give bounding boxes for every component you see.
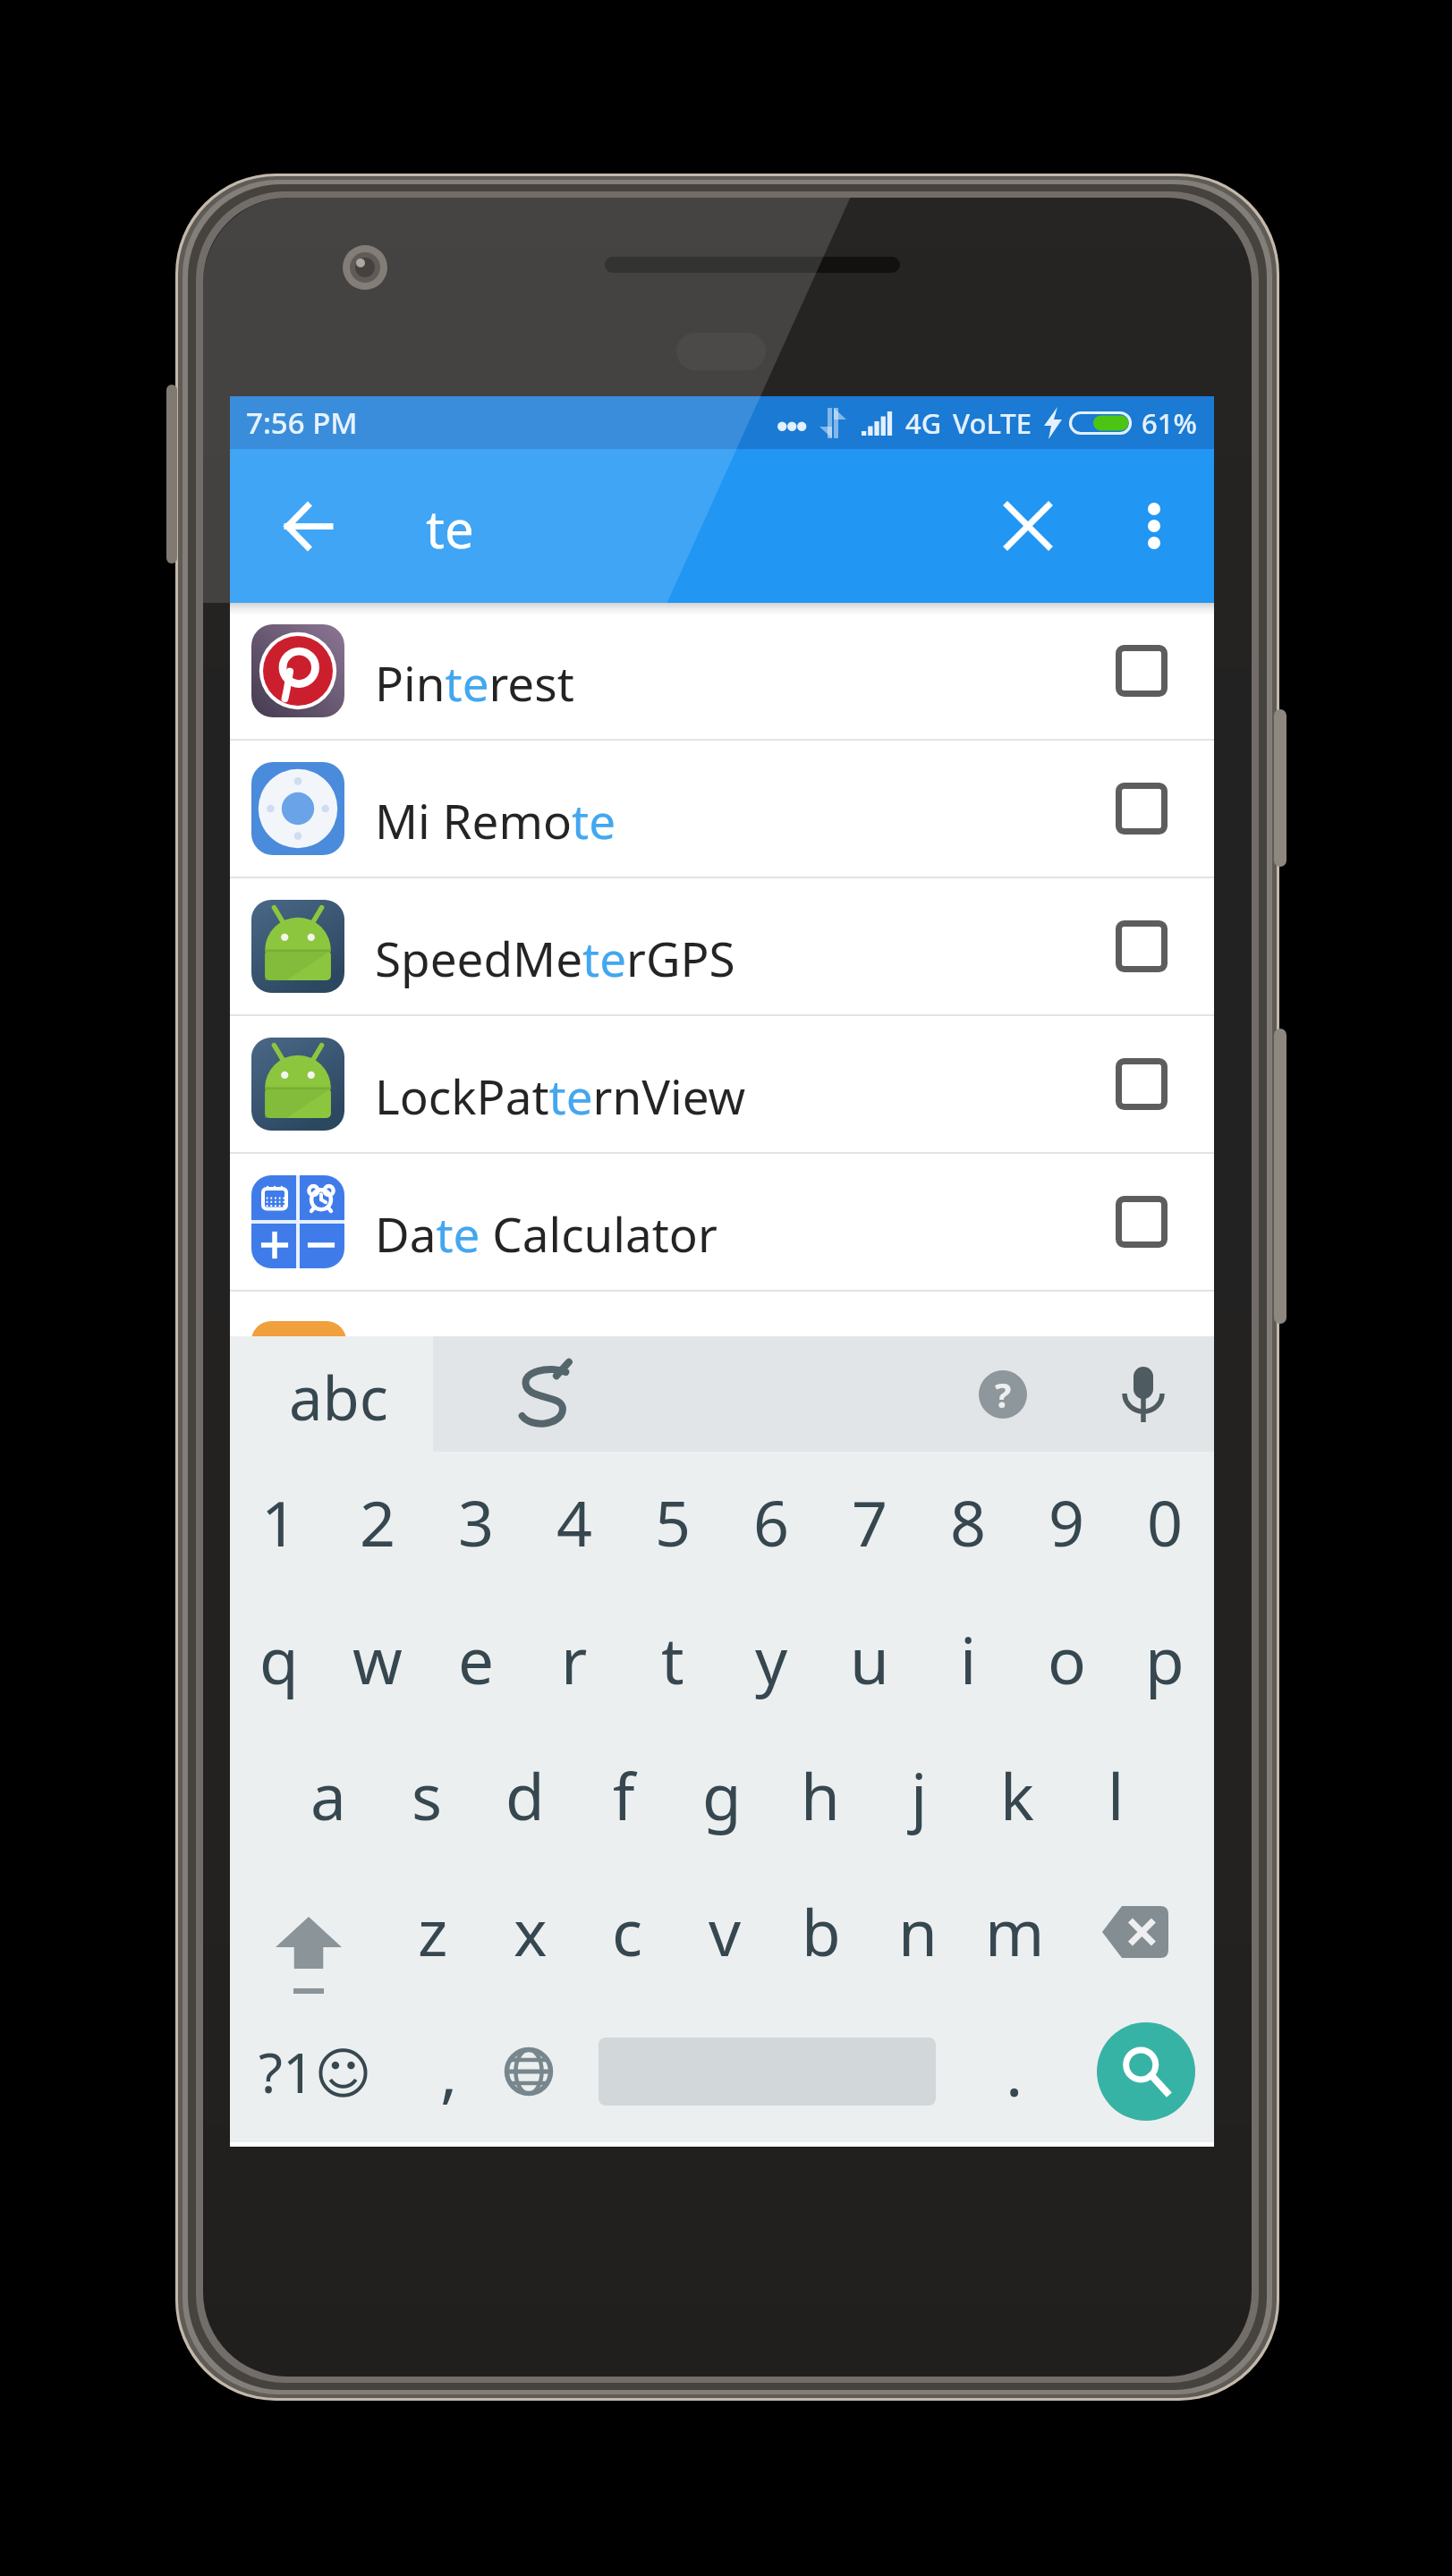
staticText: w <box>352 1616 403 1703</box>
button[interactable]: Back <box>251 449 362 603</box>
button[interactable]: 0 <box>1116 1452 1214 1591</box>
button[interactable]: Search <box>1077 2001 1214 2142</box>
button[interactable]: 3 <box>427 1452 525 1591</box>
staticText: 6 <box>753 1479 790 1564</box>
button[interactable]: Switch script <box>450 1342 638 1452</box>
staticText: i <box>960 1616 977 1703</box>
button[interactable]: l <box>1066 1728 1165 1862</box>
button[interactable]: Select app <box>1116 1058 1168 1110</box>
staticText: 5 <box>655 1479 692 1564</box>
button[interactable]: Change language <box>479 2001 579 2142</box>
staticText: h <box>801 1752 840 1839</box>
staticText: ? <box>995 1371 1012 1418</box>
button[interactable]: u <box>820 1591 919 1728</box>
button[interactable]: ?1☺ <box>244 2001 387 2142</box>
staticText: te <box>426 493 474 563</box>
button[interactable]: h <box>771 1728 870 1862</box>
button[interactable]: b <box>773 1862 870 2001</box>
button[interactable]: k <box>968 1728 1066 1862</box>
button[interactable]: m <box>966 1862 1063 2001</box>
button[interactable]: 6 <box>722 1452 820 1591</box>
staticText: . <box>1006 2028 1023 2115</box>
staticText: 1 <box>261 1479 298 1564</box>
staticText: Mi Remote <box>375 788 616 852</box>
button[interactable]: Voice input <box>1094 1336 1193 1452</box>
button[interactable]: Select app <box>1116 645 1168 697</box>
button[interactable]: q <box>230 1591 328 1728</box>
staticText: n <box>898 1888 938 1975</box>
button[interactable]: Select app <box>1116 783 1168 835</box>
staticText: c <box>612 1888 643 1975</box>
button[interactable]: 8 <box>919 1452 1017 1591</box>
staticText: 7 <box>852 1479 888 1564</box>
button[interactable]: j <box>870 1728 968 1862</box>
button[interactable]: p <box>1116 1591 1214 1728</box>
button[interactable]: 9 <box>1017 1452 1116 1591</box>
staticText: l <box>1108 1752 1125 1839</box>
button[interactable]: Mi Remote <box>230 741 1214 877</box>
button[interactable]: LockPatternView <box>230 1016 1214 1152</box>
staticText: v <box>709 1888 742 1975</box>
staticText: 2 <box>360 1479 396 1564</box>
button[interactable]: w <box>328 1591 427 1728</box>
staticText: j <box>911 1752 928 1839</box>
staticText: e <box>458 1616 495 1703</box>
button[interactable]: x <box>481 1862 579 2001</box>
button[interactable]: d <box>476 1728 574 1862</box>
button[interactable]: More options <box>1094 449 1214 603</box>
button[interactable]: f <box>574 1728 673 1862</box>
button[interactable]: Date Calculator <box>230 1154 1214 1290</box>
staticText: ?1☺ <box>259 2034 373 2109</box>
button[interactable]: z <box>384 1862 481 2001</box>
staticText: LockPatternView <box>375 1063 746 1128</box>
staticText: VoLTE <box>953 404 1032 442</box>
staticText: p <box>1145 1616 1185 1703</box>
button[interactable]: 1 <box>230 1452 328 1591</box>
staticText: s <box>412 1752 443 1839</box>
button[interactable]: SpeedMeterGPS <box>230 878 1214 1014</box>
button[interactable]: v <box>676 1862 773 2001</box>
button[interactable]: 5 <box>624 1452 722 1591</box>
button[interactable]: c <box>579 1862 676 2001</box>
button[interactable]: t <box>624 1591 722 1728</box>
staticText: z <box>418 1888 448 1975</box>
button[interactable]: Shift <box>237 1862 380 2001</box>
staticText: u <box>850 1616 889 1703</box>
button[interactable]: y <box>722 1591 820 1728</box>
button[interactable]: , <box>400 2001 498 2142</box>
staticText: abc <box>289 1356 388 1437</box>
staticText: 0 <box>1147 1479 1184 1564</box>
staticText: Pinterest <box>375 650 574 715</box>
button[interactable]: 2 <box>328 1452 427 1591</box>
button[interactable]: i <box>919 1591 1017 1728</box>
button[interactable]: 4 <box>525 1452 624 1591</box>
button[interactable]: s <box>378 1728 476 1862</box>
staticText: t <box>661 1616 684 1703</box>
button[interactable]: 7 <box>820 1452 919 1591</box>
button[interactable]: . <box>965 2001 1064 2142</box>
button[interactable]: Space <box>588 2001 946 2142</box>
staticText: Date Calculator <box>375 1201 718 1266</box>
button[interactable]: o <box>1017 1591 1116 1728</box>
button[interactable]: abc <box>237 1342 440 1452</box>
button[interactable]: e <box>427 1591 525 1728</box>
staticText: 9 <box>1049 1479 1085 1564</box>
staticText: , <box>440 2028 458 2115</box>
staticText: 3 <box>458 1479 495 1564</box>
button[interactable]: Select app <box>1116 1196 1168 1248</box>
staticText: y <box>755 1616 788 1703</box>
button[interactable]: Backspace <box>1068 1862 1202 2001</box>
button[interactable]: n <box>870 1862 966 2001</box>
staticText: k <box>1000 1752 1034 1839</box>
button[interactable]: Clear search <box>972 449 1083 603</box>
button[interactable]: Select app <box>1116 920 1168 972</box>
staticText: r <box>561 1616 588 1703</box>
staticText: q <box>259 1616 299 1703</box>
button[interactable]: a <box>279 1728 378 1862</box>
staticText: o <box>1048 1616 1086 1703</box>
button[interactable]: Pinterest <box>230 603 1214 739</box>
staticText: b <box>802 1888 841 1975</box>
button[interactable]: Help <box>954 1336 1052 1452</box>
button[interactable]: g <box>673 1728 771 1862</box>
button[interactable]: r <box>525 1591 624 1728</box>
